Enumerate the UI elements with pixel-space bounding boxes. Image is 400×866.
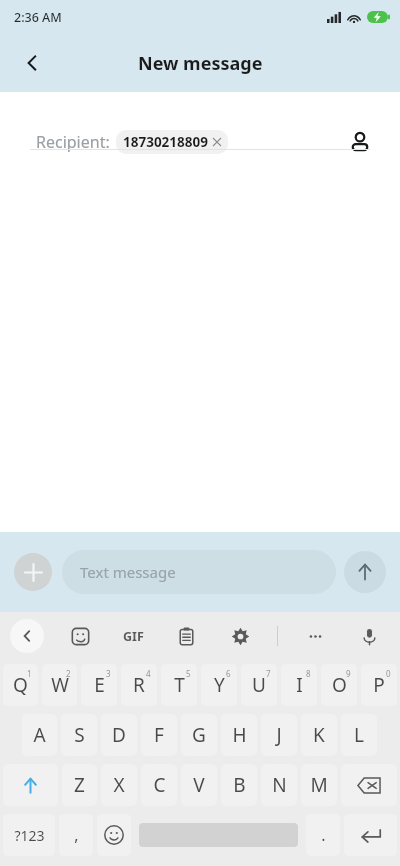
staticText: Recipient: (36, 131, 110, 153)
staticText: Q (13, 672, 28, 698)
staticText: Text message (80, 562, 176, 582)
button[interactable]: Collapse toolbar (10, 619, 44, 653)
staticText: P (373, 672, 385, 698)
button[interactable]: S (61, 714, 97, 756)
button[interactable]: GIF (116, 619, 150, 653)
staticText: G (192, 722, 206, 748)
staticText: L (354, 722, 364, 748)
button[interactable]: V (181, 764, 217, 806)
staticText: 2 (66, 668, 71, 679)
staticText: 1 (27, 668, 32, 679)
staticText: J (276, 722, 282, 748)
staticText: H (232, 722, 247, 748)
button[interactable]: R (121, 664, 157, 706)
staticText: 0 (386, 668, 391, 679)
button[interactable]: A (22, 714, 57, 756)
button[interactable]: E (81, 664, 117, 706)
button[interactable]: K (301, 714, 337, 756)
button[interactable]: ?123 (3, 814, 55, 856)
staticText: 5 (186, 668, 191, 679)
button[interactable]: B (221, 764, 257, 806)
button[interactable]: Y (201, 664, 237, 706)
staticText: B (233, 772, 246, 798)
button[interactable]: More options (298, 619, 332, 653)
button[interactable]: U (241, 664, 277, 706)
staticText: E (94, 672, 105, 698)
button[interactable]: Enter (344, 814, 397, 856)
button[interactable]: D (101, 714, 137, 756)
button[interactable]: P (361, 664, 397, 706)
button[interactable]: L (341, 714, 377, 756)
button[interactable]: F (141, 714, 177, 756)
button[interactable]: I (281, 664, 317, 706)
button[interactable]: N (261, 764, 297, 806)
staticText: V (193, 772, 205, 798)
button[interactable]: J (261, 714, 297, 756)
button[interactable]: . (306, 814, 340, 856)
button[interactable]: 18730218809 (116, 130, 228, 154)
button[interactable]: Contacts (340, 122, 380, 162)
button[interactable]: C (141, 764, 177, 806)
staticText: O (332, 672, 347, 698)
button[interactable]: T (161, 664, 197, 706)
button[interactable]: Send (344, 551, 386, 593)
staticText: ?123 (14, 826, 45, 845)
button[interactable]: G (181, 714, 217, 756)
button[interactable]: Backspace (341, 764, 397, 806)
button[interactable]: , (59, 814, 93, 856)
staticText: 3 (106, 668, 111, 679)
staticText: 2:36 AM (14, 9, 62, 26)
staticText: A (33, 722, 46, 748)
staticText: , (74, 824, 79, 846)
button[interactable]: H (221, 714, 257, 756)
staticText: 4 (146, 668, 151, 679)
staticText: D (112, 722, 126, 748)
staticText: R (133, 672, 145, 698)
button[interactable]: X (101, 764, 137, 806)
staticText: I (296, 672, 303, 698)
button[interactable]: Settings (223, 619, 257, 653)
staticText: 18730218809 (123, 133, 208, 151)
staticText: 9 (346, 668, 351, 679)
staticText: T (174, 672, 185, 698)
button[interactable]: Back (8, 39, 56, 87)
staticText: 7 (266, 668, 271, 679)
staticText: S (74, 722, 85, 748)
button[interactable]: Q (3, 664, 38, 706)
staticText: Z (74, 772, 85, 798)
staticText: M (310, 772, 328, 798)
button[interactable]: O (321, 664, 357, 706)
button[interactable]: W (42, 664, 77, 706)
staticText: X (113, 772, 125, 798)
button[interactable]: Stickers (63, 619, 97, 653)
button[interactable]: Clipboard (169, 619, 203, 653)
staticText: U (252, 672, 266, 698)
staticText: C (153, 772, 166, 798)
button[interactable]: Z (62, 764, 97, 806)
staticText: . (321, 824, 326, 846)
staticText: N (272, 772, 287, 798)
staticText: GIF (123, 628, 144, 645)
button[interactable]: M (301, 764, 337, 806)
staticText: F (154, 722, 164, 748)
button[interactable]: Add attachment (14, 553, 52, 591)
staticText: 6 (226, 668, 231, 679)
button[interactable]: Text message (62, 550, 336, 594)
staticText: 8 (306, 668, 311, 679)
staticText: New message (138, 51, 263, 76)
staticText: Y (214, 672, 225, 698)
staticText: K (313, 722, 325, 748)
button[interactable]: Shift (3, 764, 58, 806)
button[interactable]: Emoji (97, 814, 131, 856)
button[interactable]: Voice input (352, 619, 386, 653)
staticText: W (51, 672, 69, 698)
